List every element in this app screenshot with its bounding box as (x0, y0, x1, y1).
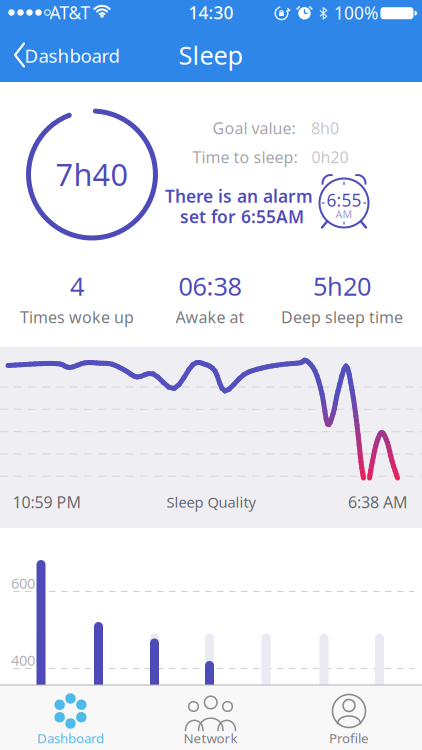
button[interactable]: Network (140, 686, 280, 750)
staticText: 06:38 (178, 269, 241, 303)
staticText: 400 (11, 650, 35, 670)
staticText: Goal value: (212, 117, 295, 139)
staticText: 5h20 (313, 269, 371, 303)
staticText: 7h40 (55, 154, 128, 194)
staticText: Times woke up (20, 306, 134, 328)
staticText: Sleep (178, 38, 243, 72)
staticText: Dashboard (37, 729, 104, 747)
staticText: 6:55 (326, 188, 361, 211)
staticText: 4 (70, 269, 84, 303)
staticText: 0h20 (311, 146, 348, 168)
staticText: 10:59 PM (12, 491, 81, 513)
staticText: 8h0 (311, 117, 339, 139)
staticText: Profile (329, 729, 369, 747)
staticText: 100% (334, 1, 378, 24)
button[interactable]: Profile (280, 686, 420, 750)
staticText: Network (183, 729, 237, 747)
staticText: AT&T (49, 1, 90, 24)
staticText: Awake at (175, 306, 244, 328)
staticText: AM (335, 207, 352, 221)
staticText: Deep sleep time (281, 306, 403, 328)
staticText: 600 (11, 573, 35, 593)
staticText: 14:30 (188, 1, 233, 24)
staticText: Dashboard (24, 43, 119, 68)
staticText: There is an alarm (165, 184, 313, 207)
staticText: Sleep Quality (166, 492, 255, 512)
staticText: Time to sleep: (192, 146, 297, 168)
staticText: 6:38 AM (348, 491, 408, 513)
staticText: set for 6:55AM (180, 205, 304, 228)
button[interactable]: Dashboard (0, 686, 140, 750)
button[interactable]: Back to Dashboard (4, 33, 129, 77)
